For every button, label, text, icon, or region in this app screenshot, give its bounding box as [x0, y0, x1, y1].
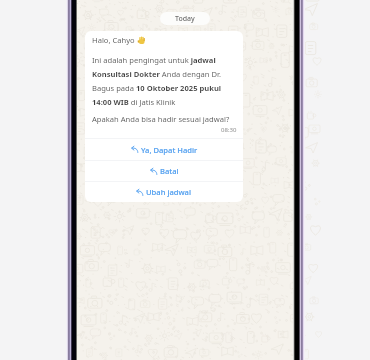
button[interactable]: Batal [85, 161, 243, 181]
button[interactable]: Ubah jadwal [85, 182, 243, 202]
staticText: Ini adalah pengingat untuk jadwal Konsul… [92, 55, 237, 107]
staticText: Halo, Cahyo [92, 35, 135, 45]
staticText: Batal [160, 166, 179, 176]
button[interactable]: Today [160, 12, 210, 25]
staticText: 08:30 [221, 126, 237, 134]
staticText: Ubah jadwal [146, 187, 192, 197]
button[interactable]: Ya, Dapat Hadir [85, 139, 243, 160]
staticText: Ya, Dapat Hadir [141, 145, 198, 155]
staticText: Today [175, 14, 195, 24]
staticText: Apakah Anda bisa hadir sesuai jadwal? [92, 114, 230, 124]
